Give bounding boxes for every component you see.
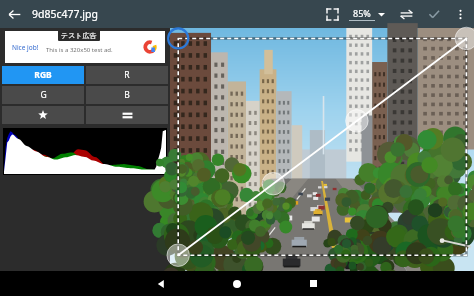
button[interactable]: Back bbox=[0, 0, 28, 28]
button[interactable]: Nice job! bbox=[5, 31, 165, 63]
button[interactable]: Home bbox=[218, 271, 256, 296]
button[interactable]: G bbox=[2, 86, 84, 104]
button[interactable]: 85% bbox=[346, 7, 388, 21]
button[interactable]: Fit to screen bbox=[318, 0, 346, 28]
button[interactable]: More options bbox=[448, 2, 472, 26]
staticText: B bbox=[124, 89, 130, 101]
button[interactable]: Menu bbox=[86, 106, 168, 124]
staticText: 9d85c477.jpg bbox=[32, 7, 98, 21]
staticText: RGB bbox=[34, 69, 52, 81]
button[interactable]: Apply bbox=[420, 0, 448, 28]
button[interactable]: RGB bbox=[2, 66, 84, 84]
button[interactable]: B bbox=[86, 86, 168, 104]
button[interactable]: Recent apps bbox=[294, 271, 332, 296]
button[interactable]: R bbox=[86, 66, 168, 84]
staticText: This is a 320x50 test ad. bbox=[46, 46, 113, 54]
button[interactable]: Back bbox=[142, 271, 180, 296]
button[interactable]: Favorite bbox=[2, 106, 84, 124]
button[interactable]: Compare bbox=[392, 0, 420, 28]
staticText: Nice job! bbox=[12, 43, 39, 52]
staticText: G bbox=[40, 89, 47, 101]
staticText: 85% bbox=[353, 7, 371, 19]
staticText: R bbox=[124, 69, 130, 81]
staticText: テスト広告 bbox=[61, 31, 97, 40]
